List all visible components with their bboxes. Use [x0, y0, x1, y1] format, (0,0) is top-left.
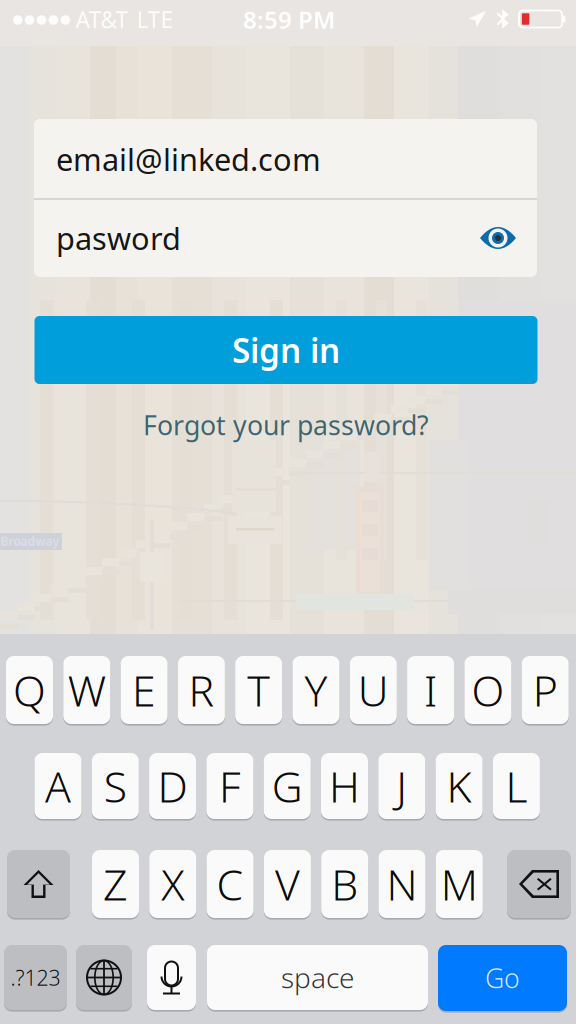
staticText: LTE [136, 4, 173, 34]
staticText: S [104, 758, 127, 814]
staticText: R [188, 662, 214, 718]
button[interactable]: I [407, 656, 454, 726]
button[interactable]: X [149, 850, 196, 920]
button[interactable]: O [464, 656, 511, 726]
button[interactable]: Next keyboard [76, 945, 132, 1012]
button[interactable]: W [63, 656, 110, 726]
staticText: W [68, 662, 106, 718]
button[interactable]: V [264, 850, 311, 920]
button[interactable]: A [34, 753, 81, 821]
button[interactable]: Forgot your password? [34, 402, 537, 448]
button[interactable]: space [207, 945, 428, 1012]
staticText: J [396, 758, 407, 814]
staticText: B [331, 856, 358, 912]
button[interactable]: Shift [7, 850, 70, 920]
staticText: Broadway [0, 533, 59, 549]
button[interactable]: N [378, 850, 425, 920]
button[interactable]: Dictation [147, 945, 196, 1012]
button[interactable]: U [350, 656, 397, 726]
button[interactable]: Y [292, 656, 339, 726]
button[interactable]: K [436, 753, 483, 821]
button[interactable]: P [522, 656, 569, 726]
button[interactable]: H [321, 753, 368, 821]
staticText: pasword [56, 218, 181, 258]
button[interactable]: pasword [34, 198, 537, 277]
button[interactable]: .?123 [4, 945, 67, 1012]
staticText: 8:59 PM [243, 4, 335, 35]
button[interactable]: E [121, 656, 168, 726]
button[interactable]: Z [92, 850, 139, 920]
staticText: Forgot your password? [143, 407, 429, 443]
staticText: X [161, 856, 184, 912]
staticText: C [217, 856, 244, 912]
staticText: Y [304, 662, 327, 718]
button[interactable]: Go [438, 945, 567, 1013]
staticText: Go [485, 960, 520, 996]
staticText: V [275, 856, 300, 912]
button[interactable]: R [178, 656, 225, 726]
staticText: H [329, 758, 360, 814]
button[interactable]: S [92, 753, 139, 821]
button[interactable]: Q [6, 656, 53, 726]
button[interactable]: email@linked.com [34, 119, 537, 198]
button[interactable]: G [264, 753, 311, 821]
staticText: Z [103, 856, 128, 912]
staticText: T [247, 662, 270, 718]
staticText: .?123 [10, 963, 60, 992]
staticText: P [533, 662, 558, 718]
staticText: O [471, 662, 504, 718]
button[interactable]: J [378, 753, 425, 821]
button[interactable]: Delete [507, 850, 571, 920]
button[interactable]: T [235, 656, 282, 726]
staticText: G [272, 758, 303, 814]
staticText: AT&T [75, 4, 128, 34]
button[interactable]: L [493, 753, 540, 821]
staticText: N [386, 856, 417, 912]
button[interactable]: Sign in [34, 316, 537, 384]
staticText: F [219, 758, 241, 814]
button[interactable]: F [206, 753, 253, 821]
staticText: K [447, 758, 472, 814]
button[interactable]: D [149, 753, 196, 821]
button[interactable]: C [207, 850, 254, 920]
staticText: space [281, 959, 354, 996]
staticText: U [358, 662, 389, 718]
staticText: E [132, 662, 156, 718]
staticText: A [45, 758, 71, 814]
staticText: Q [13, 662, 46, 718]
staticText: email@linked.com [56, 139, 321, 179]
staticText: Sign in [232, 328, 340, 372]
staticText: I [424, 662, 437, 718]
staticText: D [158, 758, 188, 814]
staticText: L [505, 758, 527, 814]
button[interactable]: M [436, 850, 483, 920]
staticText: M [441, 856, 478, 912]
button[interactable]: B [321, 850, 368, 920]
